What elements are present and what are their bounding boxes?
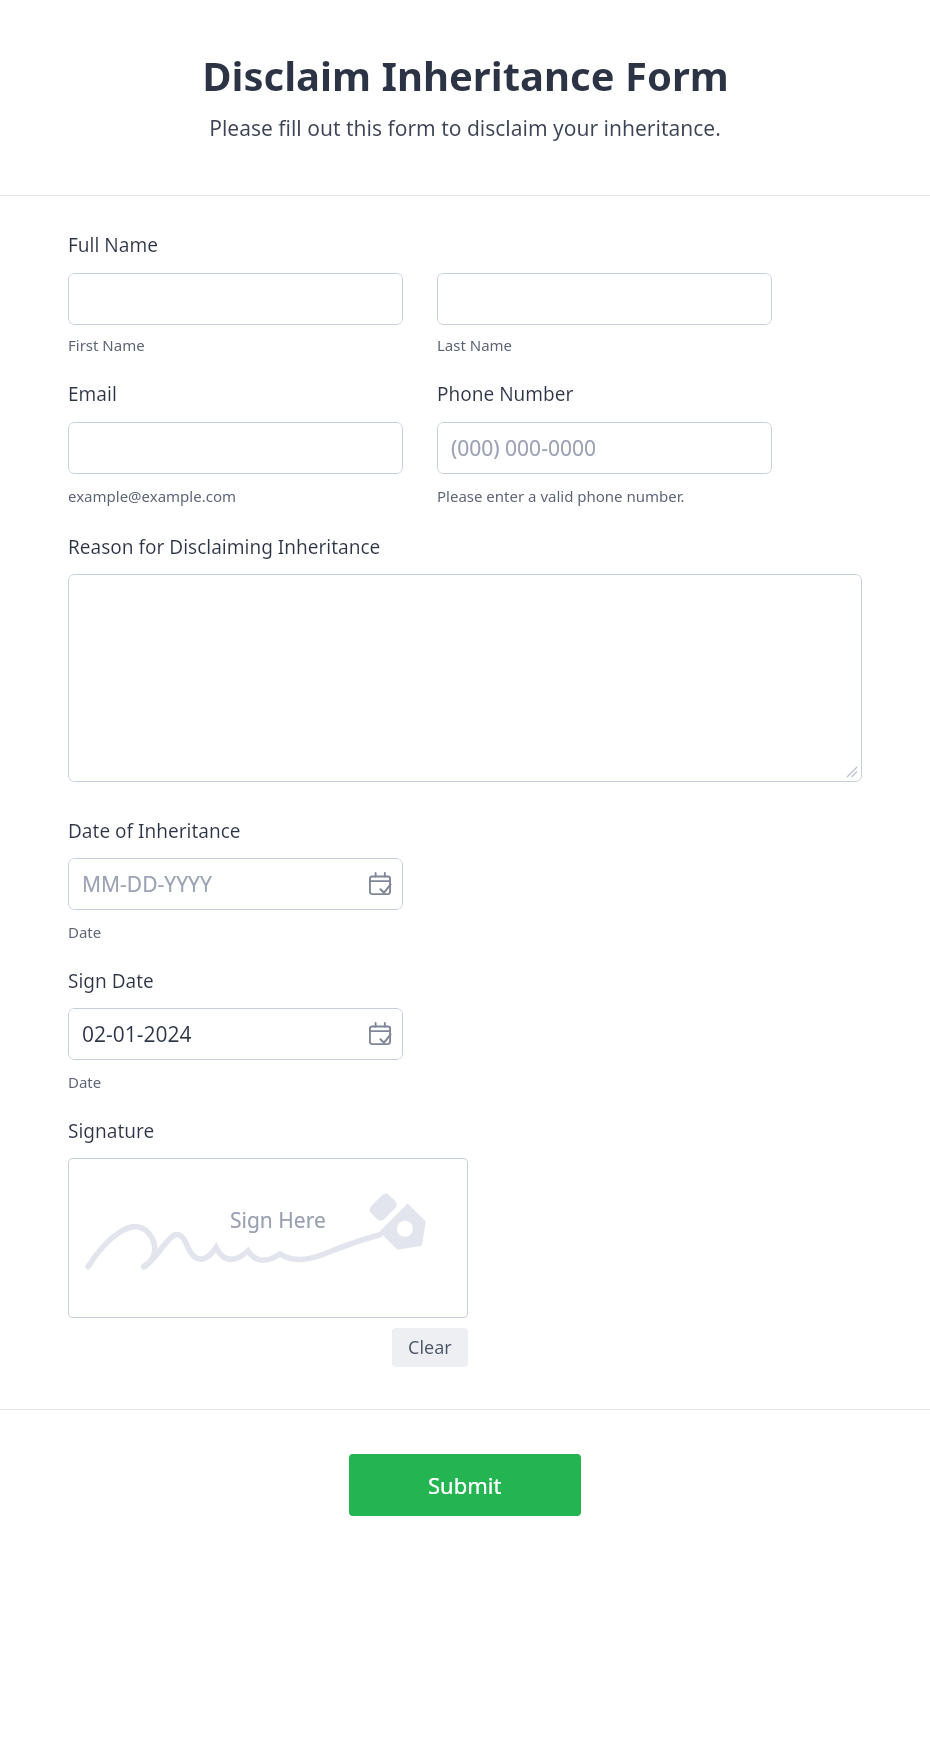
staticText: Clear bbox=[408, 1335, 452, 1360]
staticText: Sign Date bbox=[68, 968, 154, 994]
staticText: Reason for Disclaiming Inheritance bbox=[68, 534, 381, 560]
staticText: 02-01-2024 bbox=[82, 1020, 192, 1049]
staticText: example@example.com bbox=[68, 486, 236, 506]
staticText: Sign Here bbox=[230, 1206, 326, 1235]
staticText: Submit bbox=[428, 1470, 502, 1500]
staticText: Please enter a valid phone number. bbox=[437, 486, 685, 506]
staticText: Disclaim Inheritance Form bbox=[202, 48, 729, 102]
staticText: Date bbox=[68, 922, 102, 942]
staticText: Please fill out this form to disclaim yo… bbox=[209, 114, 721, 143]
button[interactable] bbox=[68, 273, 403, 325]
button[interactable]: Open calendar bbox=[369, 873, 391, 895]
button[interactable]: Clear bbox=[392, 1328, 468, 1367]
button[interactable]: Submit bbox=[349, 1454, 581, 1516]
staticText: Last Name bbox=[437, 335, 513, 355]
staticText: Date of Inheritance bbox=[68, 818, 241, 844]
button[interactable] bbox=[68, 422, 403, 474]
button[interactable] bbox=[437, 273, 772, 325]
staticText: Date bbox=[68, 1072, 102, 1092]
button[interactable]: (000) 000-0000 bbox=[437, 422, 772, 474]
staticText: Email bbox=[68, 381, 117, 407]
staticText: Full Name bbox=[68, 232, 158, 258]
button[interactable] bbox=[68, 574, 862, 782]
staticText: First Name bbox=[68, 335, 145, 355]
staticText: MM-DD-YYYY bbox=[82, 870, 212, 899]
button[interactable]: MM-DD-YYYY bbox=[68, 858, 403, 910]
button[interactable]: Signature pad bbox=[68, 1158, 468, 1318]
staticText: (000) 000-0000 bbox=[451, 434, 596, 463]
button[interactable]: Open calendar bbox=[369, 1023, 391, 1045]
staticText: Phone Number bbox=[437, 381, 574, 407]
staticText: Signature bbox=[68, 1118, 155, 1144]
button[interactable]: 02-01-2024 bbox=[68, 1008, 403, 1060]
